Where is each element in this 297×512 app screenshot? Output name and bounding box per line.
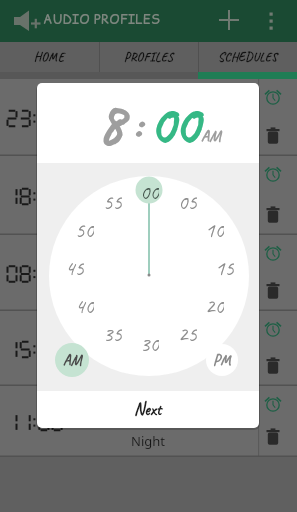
staticText: SCHEDULES — [218, 49, 278, 65]
staticText: 50 — [75, 217, 94, 239]
staticText: 10 — [205, 217, 224, 239]
staticText: 8 — [97, 85, 124, 161]
staticText: Night — [131, 432, 165, 450]
button[interactable] — [262, 393, 286, 417]
staticText: AM — [201, 126, 221, 146]
button[interactable]: PM — [205, 343, 239, 377]
button[interactable]: SCHEDULES — [199, 42, 297, 72]
staticText: 35 — [103, 321, 122, 343]
staticText: 05 — [178, 189, 197, 211]
button[interactable] — [262, 353, 286, 377]
button[interactable] — [262, 424, 286, 448]
staticText: 30 — [140, 331, 159, 353]
staticText: 15 — [215, 255, 234, 277]
staticText: 55 — [103, 189, 122, 211]
button[interactable]: HOME — [0, 42, 99, 72]
staticText: AUDIO PROFILES — [43, 10, 161, 28]
button[interactable]: Night — [0, 386, 297, 457]
button[interactable] — [135, 176, 163, 204]
button[interactable]: Day — [0, 79, 297, 156]
staticText: PM — [213, 351, 231, 370]
button[interactable]: Home — [0, 235, 297, 311]
button[interactable]: PROFILES — [100, 42, 198, 72]
button[interactable] — [262, 242, 286, 266]
staticText: PROFILES — [124, 49, 174, 65]
staticText: Next — [134, 399, 162, 420]
staticText: 20 — [205, 293, 224, 315]
staticText: 45 — [65, 255, 84, 277]
button[interactable] — [212, 4, 246, 38]
button[interactable] — [262, 318, 286, 342]
staticText: AM — [63, 351, 82, 370]
staticText: Day — [136, 131, 160, 149]
button[interactable]: Work — [0, 156, 297, 235]
button[interactable] — [255, 4, 289, 38]
staticText: Work — [132, 210, 165, 228]
button[interactable]: Silent — [0, 311, 297, 386]
staticText: : — [124, 96, 149, 151]
staticText: 00 — [140, 179, 159, 201]
staticText: Silent — [131, 361, 165, 379]
button[interactable] — [262, 86, 286, 110]
staticText: 40 — [75, 293, 94, 315]
staticText: 25 — [178, 321, 197, 343]
button[interactable]: AM — [55, 343, 89, 377]
button[interactable] — [262, 123, 286, 147]
button[interactable] — [262, 163, 286, 187]
button[interactable] — [262, 278, 286, 302]
button[interactable]: Next — [37, 391, 259, 428]
staticText: HOME — [34, 49, 65, 65]
staticText: 00 — [149, 87, 199, 160]
button[interactable] — [262, 202, 286, 226]
